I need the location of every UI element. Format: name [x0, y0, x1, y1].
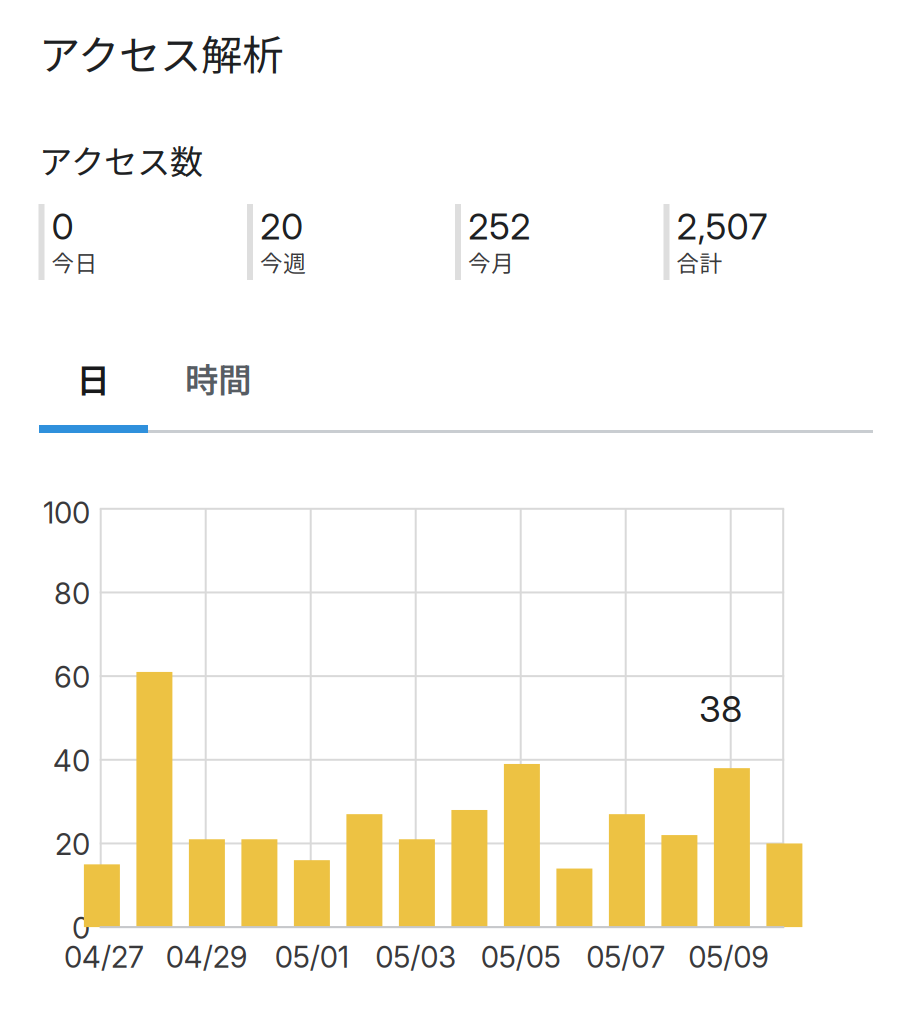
staticText: 100	[43, 495, 90, 531]
staticText: 今週	[260, 245, 306, 278]
staticText: 38	[699, 687, 742, 731]
staticText: 20	[260, 204, 303, 248]
staticText: 0	[72, 910, 90, 946]
staticText: 合計	[676, 245, 722, 278]
staticText: 04/29	[166, 939, 248, 975]
staticText: 05/01	[275, 939, 349, 975]
staticText: 05/09	[688, 939, 769, 975]
staticText: 20	[55, 827, 90, 862]
staticText: 05/05	[481, 939, 561, 975]
staticText: 04/27	[64, 939, 144, 975]
staticText: 時間	[185, 354, 251, 402]
staticText: 2,507	[676, 204, 767, 248]
staticText: 今月	[468, 245, 514, 278]
staticText: 05/07	[586, 939, 665, 975]
staticText: 80	[54, 576, 90, 611]
staticText: 60	[54, 659, 90, 695]
staticText: 05/03	[375, 939, 456, 975]
button[interactable]: 日	[38, 346, 148, 410]
staticText: 252	[468, 204, 531, 248]
button[interactable]: 時間	[163, 346, 273, 410]
staticText: アクセス数	[39, 135, 203, 184]
staticText: 今日	[51, 245, 97, 278]
staticText: アクセス解析	[39, 22, 283, 82]
staticText: 40	[53, 743, 90, 778]
staticText: 0	[51, 204, 73, 248]
staticText: 日	[76, 354, 109, 402]
